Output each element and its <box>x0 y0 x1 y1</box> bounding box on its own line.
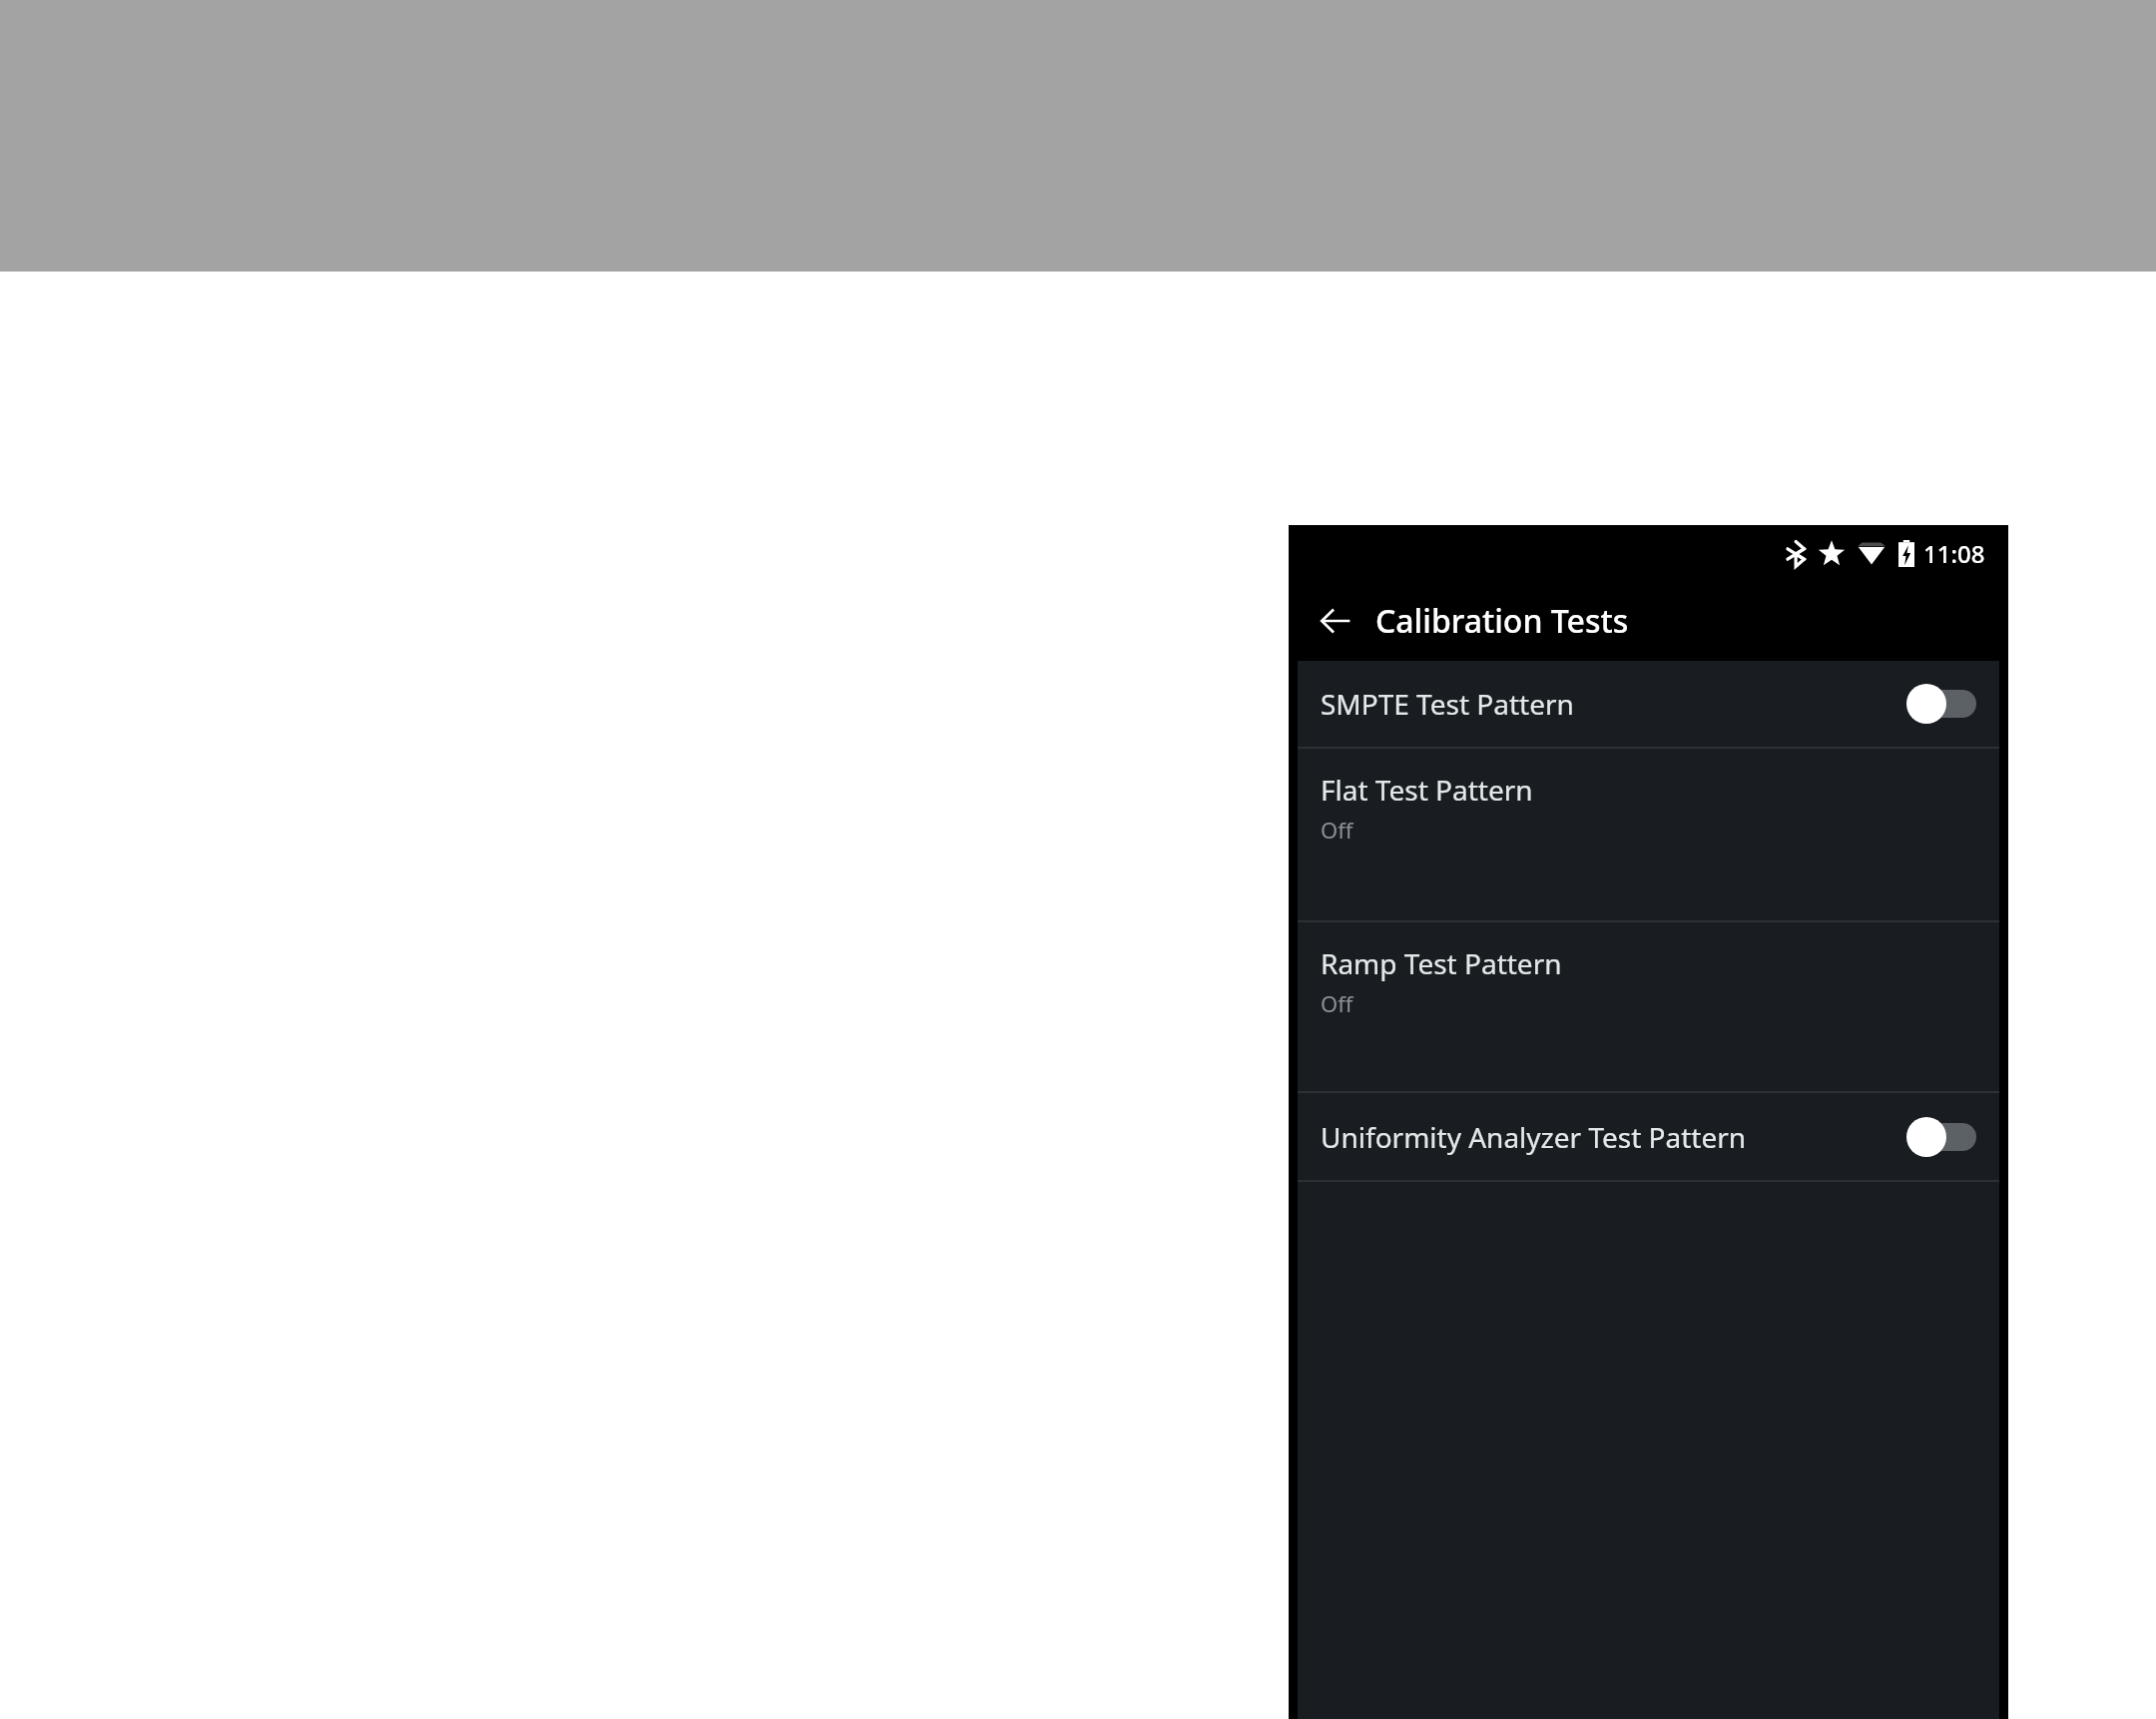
staticText: Off <box>1321 815 1353 845</box>
button[interactable]: Back <box>1308 593 1363 649</box>
staticText: Uniformity Analyzer Test Pattern <box>1321 1118 1906 1156</box>
staticText: Off <box>1321 988 1353 1018</box>
button[interactable]: Uniformity Analyzer Test Pattern <box>1298 1093 1999 1180</box>
staticText: SMPTE Test Pattern <box>1321 685 1906 723</box>
staticText: Ramp Test Pattern <box>1321 944 1562 982</box>
staticText: Calibration Tests <box>1375 599 1629 643</box>
button[interactable]: Flat Test Pattern <box>1298 749 1999 920</box>
button[interactable]: Ramp Test Pattern <box>1298 922 1999 1091</box>
button[interactable]: SMPTE Test Pattern <box>1298 661 1999 747</box>
staticText: Flat Test Pattern <box>1321 771 1533 809</box>
staticText: 11:08 <box>1923 537 1985 570</box>
